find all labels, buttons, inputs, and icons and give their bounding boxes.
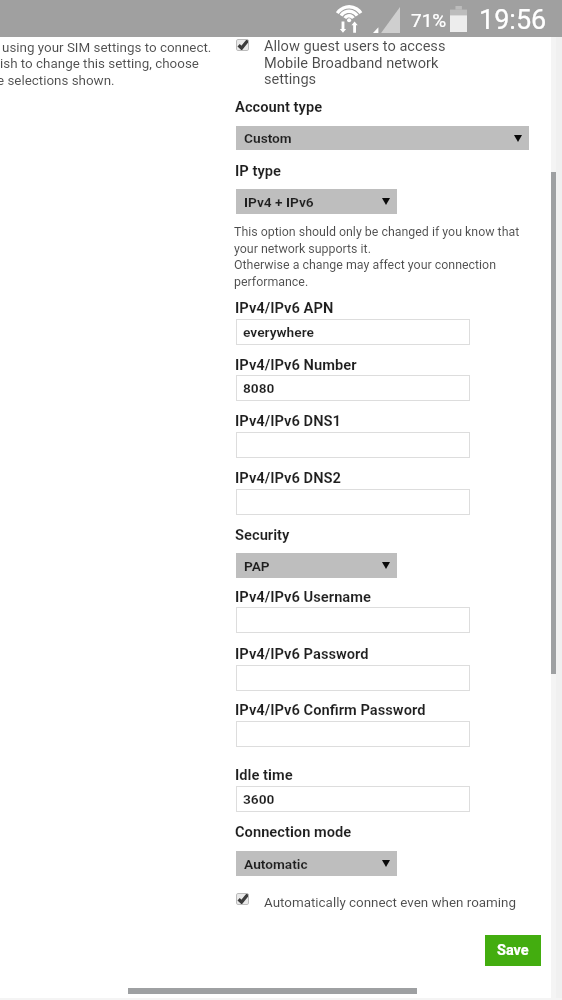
button[interactable] [236, 489, 470, 515]
staticText: This option should only be changed if yo… [234, 224, 520, 239]
other: Wi-Fi connected [334, 4, 363, 34]
staticText: Connection mode [235, 823, 352, 840]
button[interactable]: everywhere [236, 319, 470, 345]
button[interactable]: Checkbox, checked [236, 39, 249, 51]
staticText: ish to change this setting, choose [0, 56, 199, 72]
staticText: IPv4/IPv6 Username [235, 588, 371, 605]
button[interactable]: 3600 [236, 786, 470, 812]
staticText: IPv4/IPv6 DNS1 [235, 412, 342, 429]
staticText: 19:56 [479, 4, 547, 36]
button[interactable]: PAP [236, 553, 397, 578]
staticText: Save [497, 942, 529, 959]
staticText: Idle time [235, 766, 293, 783]
other: Battery 71 percent [450, 6, 467, 32]
staticText: 3600 [243, 791, 275, 807]
staticText: IPv4/IPv6 Number [235, 356, 357, 373]
other: Mobile signal [373, 7, 400, 33]
staticText: Automatic [244, 856, 308, 872]
button[interactable]: Custom [236, 126, 529, 150]
staticText: Security [235, 526, 290, 543]
staticText: Custom [244, 130, 292, 146]
staticText: Automatically connect even when roaming [264, 895, 517, 911]
staticText: 8080 [243, 380, 275, 396]
button[interactable] [236, 721, 470, 747]
staticText: Account type [235, 98, 323, 115]
staticText: Otherwise a change may affect your conne… [234, 257, 496, 272]
staticText: PAP [244, 558, 270, 574]
staticText: settings [264, 70, 317, 87]
button[interactable] [236, 432, 470, 458]
staticText: IPv4/IPv6 APN [235, 299, 334, 316]
staticText: IPv4/IPv6 Password [235, 645, 369, 662]
button[interactable]: IPv4 + IPv6 [236, 189, 397, 214]
staticText: Allow guest users to access [264, 37, 446, 54]
button[interactable]: Save [485, 935, 541, 966]
staticText: performance. [234, 274, 309, 289]
staticText: everywhere [243, 324, 314, 340]
staticText: e selections shown. [0, 73, 115, 89]
staticText: using your SIM settings to connect. [2, 40, 212, 56]
button[interactable]: Checkbox, checked [236, 893, 249, 905]
button[interactable]: 8080 [236, 375, 470, 401]
staticText: 71% [411, 9, 447, 31]
staticText: IPv4/IPv6 Confirm Password [235, 701, 426, 718]
staticText: IP type [235, 162, 281, 179]
staticText: Mobile Broadband network [264, 54, 439, 71]
staticText: IPv4/IPv6 DNS2 [235, 469, 342, 486]
button[interactable] [236, 665, 470, 691]
staticText: your network supports it. [234, 241, 371, 256]
button[interactable] [236, 607, 470, 633]
staticText: IPv4 + IPv6 [244, 194, 314, 210]
button[interactable]: Automatic [236, 851, 397, 876]
